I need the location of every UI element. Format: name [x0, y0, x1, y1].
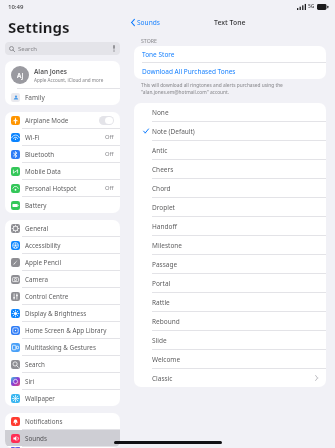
- button[interactable]: Note (Default): [134, 122, 326, 140]
- button[interactable]: Battery: [5, 197, 120, 213]
- button[interactable]: Notifications: [5, 413, 120, 429]
- button[interactable]: None: [134, 103, 326, 121]
- staticText: Personal Hotspot: [25, 184, 105, 193]
- button[interactable]: Airplane Mode: [5, 112, 120, 128]
- staticText: This will download all ringtones and ale…: [141, 82, 283, 89]
- button[interactable]: Accessibility: [5, 237, 120, 253]
- staticText: Rattle: [152, 298, 318, 307]
- button[interactable]: Wi-Fi: [5, 129, 120, 145]
- staticText: Wi-Fi: [25, 133, 105, 142]
- button[interactable]: Rattle: [134, 293, 326, 311]
- staticText: Antic: [152, 146, 318, 155]
- staticText: Droplet: [152, 203, 318, 212]
- staticText: Classic: [152, 374, 315, 383]
- button[interactable]: General: [5, 220, 120, 236]
- staticText: Settings: [8, 17, 70, 37]
- staticText: Off: [105, 133, 114, 141]
- staticText: Family: [25, 93, 45, 102]
- button[interactable]: Welcome: [134, 350, 326, 368]
- button[interactable]: Search: [5, 42, 120, 55]
- staticText: Mobile Data: [25, 167, 114, 176]
- button[interactable]: Rebound: [134, 312, 326, 330]
- button[interactable]: Portal: [134, 274, 326, 292]
- button[interactable]: Sounds: [129, 16, 162, 29]
- staticText: "alan.jones.em@hotmail.com" account.: [141, 89, 230, 96]
- button[interactable]: Passage: [134, 255, 326, 273]
- staticText: 10:49: [8, 3, 24, 11]
- staticText: Airplane Mode: [25, 116, 99, 125]
- staticText: Sounds: [137, 18, 160, 27]
- staticText: STORE: [141, 37, 157, 44]
- button[interactable]: Wallpaper: [5, 390, 120, 406]
- staticText: Note (Default): [152, 127, 318, 136]
- button[interactable]: Camera: [5, 271, 120, 287]
- staticText: Alan Jones: [34, 67, 68, 76]
- staticText: Wallpaper: [25, 394, 114, 403]
- staticText: Bluetooth: [25, 150, 105, 159]
- button[interactable]: Apple Pencil: [5, 254, 120, 270]
- staticText: Search: [18, 45, 112, 53]
- button[interactable]: Classic: [134, 369, 326, 387]
- button[interactable]: Cheers: [134, 160, 326, 178]
- staticText: Apple Account, iCloud and more: [34, 77, 104, 83]
- button[interactable]: Antic: [134, 141, 326, 159]
- button[interactable]: Search: [5, 356, 120, 372]
- staticText: Multitasking & Gestures: [25, 343, 114, 352]
- staticText: Control Centre: [25, 292, 114, 301]
- staticText: Welcome: [152, 355, 318, 364]
- button[interactable]: Display & Brightness: [5, 305, 120, 321]
- button[interactable]: Tone Store: [134, 46, 326, 62]
- button[interactable]: Family: [5, 89, 120, 105]
- staticText: Cheers: [152, 165, 318, 174]
- button[interactable]: AJ: [5, 61, 120, 88]
- button[interactable]: Personal Hotspot: [5, 180, 120, 196]
- button[interactable]: Droplet: [134, 198, 326, 216]
- button[interactable]: Mobile Data: [5, 163, 120, 179]
- button[interactable]: Home Screen & App Library: [5, 322, 120, 338]
- staticText: Download All Purchased Tones: [142, 67, 236, 76]
- button[interactable]: Slide: [134, 331, 326, 349]
- staticText: Home Screen & App Library: [25, 326, 114, 335]
- staticText: Handoff: [152, 222, 318, 231]
- button[interactable]: Chord: [134, 179, 326, 197]
- staticText: Chord: [152, 184, 318, 193]
- staticText: Accessibility: [25, 241, 114, 250]
- staticText: Portal: [152, 279, 318, 288]
- staticText: Text Tone: [214, 18, 246, 27]
- staticText: Milestone: [152, 241, 318, 250]
- button[interactable]: Siri: [5, 373, 120, 389]
- staticText: Rebound: [152, 317, 318, 326]
- staticText: Passage: [152, 260, 318, 269]
- button[interactable]: Focus: [5, 447, 120, 448]
- button[interactable]: Bluetooth: [5, 146, 120, 162]
- staticText: Display & Brightness: [25, 309, 114, 318]
- button[interactable]: Download All Purchased Tones: [134, 63, 326, 79]
- button[interactable]: Control Centre: [5, 288, 120, 304]
- staticText: Off: [105, 184, 114, 192]
- staticText: 5G: [308, 3, 315, 10]
- staticText: AJ: [17, 71, 24, 80]
- staticText: Sounds: [25, 434, 114, 443]
- button[interactable]: Milestone: [134, 236, 326, 254]
- button[interactable]: Multitasking & Gestures: [5, 339, 120, 355]
- staticText: Camera: [25, 275, 114, 284]
- staticText: Siri: [25, 377, 114, 386]
- staticText: Battery: [25, 201, 114, 210]
- staticText: Apple Pencil: [25, 258, 114, 267]
- staticText: Slide: [152, 336, 318, 345]
- button[interactable]: Handoff: [134, 217, 326, 235]
- staticText: Tone Store: [142, 50, 175, 59]
- staticText: General: [25, 224, 114, 233]
- staticText: Off: [105, 150, 114, 158]
- staticText: Notifications: [25, 417, 114, 426]
- staticText: None: [152, 108, 318, 117]
- staticText: Search: [25, 360, 114, 369]
- button[interactable]: Sounds: [5, 430, 120, 446]
